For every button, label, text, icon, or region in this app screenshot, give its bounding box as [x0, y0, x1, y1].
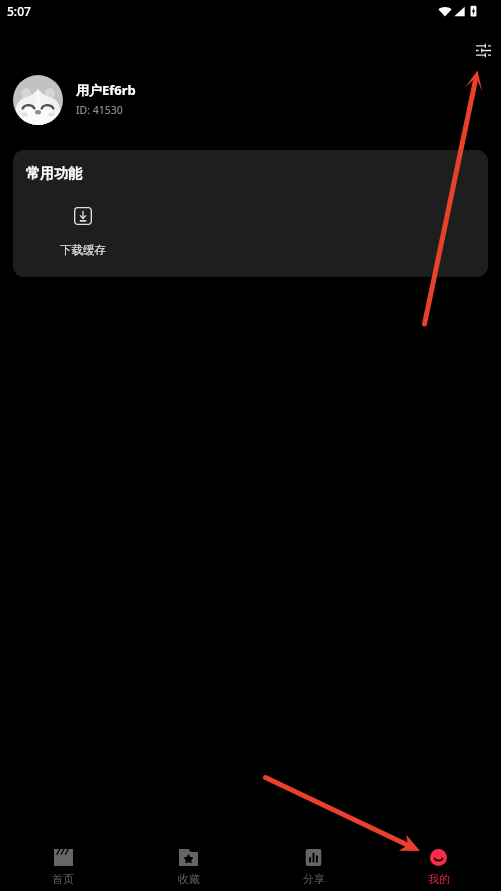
staticText: 分享: [303, 872, 325, 886]
staticText: 首页: [52, 872, 74, 886]
button[interactable]: 分享: [251, 843, 376, 891]
staticText: ID: 41530: [76, 103, 123, 117]
button[interactable]: 下载缓存: [42, 207, 124, 257]
button[interactable]: 收藏: [126, 843, 251, 891]
staticText: 常用功能: [26, 165, 82, 183]
staticText: 收藏: [178, 872, 200, 886]
staticText: 用户Ef6rb: [76, 81, 136, 99]
button[interactable]: 我的: [376, 843, 501, 891]
staticText: 我的: [428, 872, 450, 886]
staticText: 5:07: [7, 3, 31, 19]
button[interactable]: 用户Ef6rb: [0, 72, 501, 128]
staticText: 下载缓存: [60, 243, 106, 257]
button[interactable]: 首页: [0, 843, 126, 891]
button[interactable]: Settings: [465, 32, 501, 68]
